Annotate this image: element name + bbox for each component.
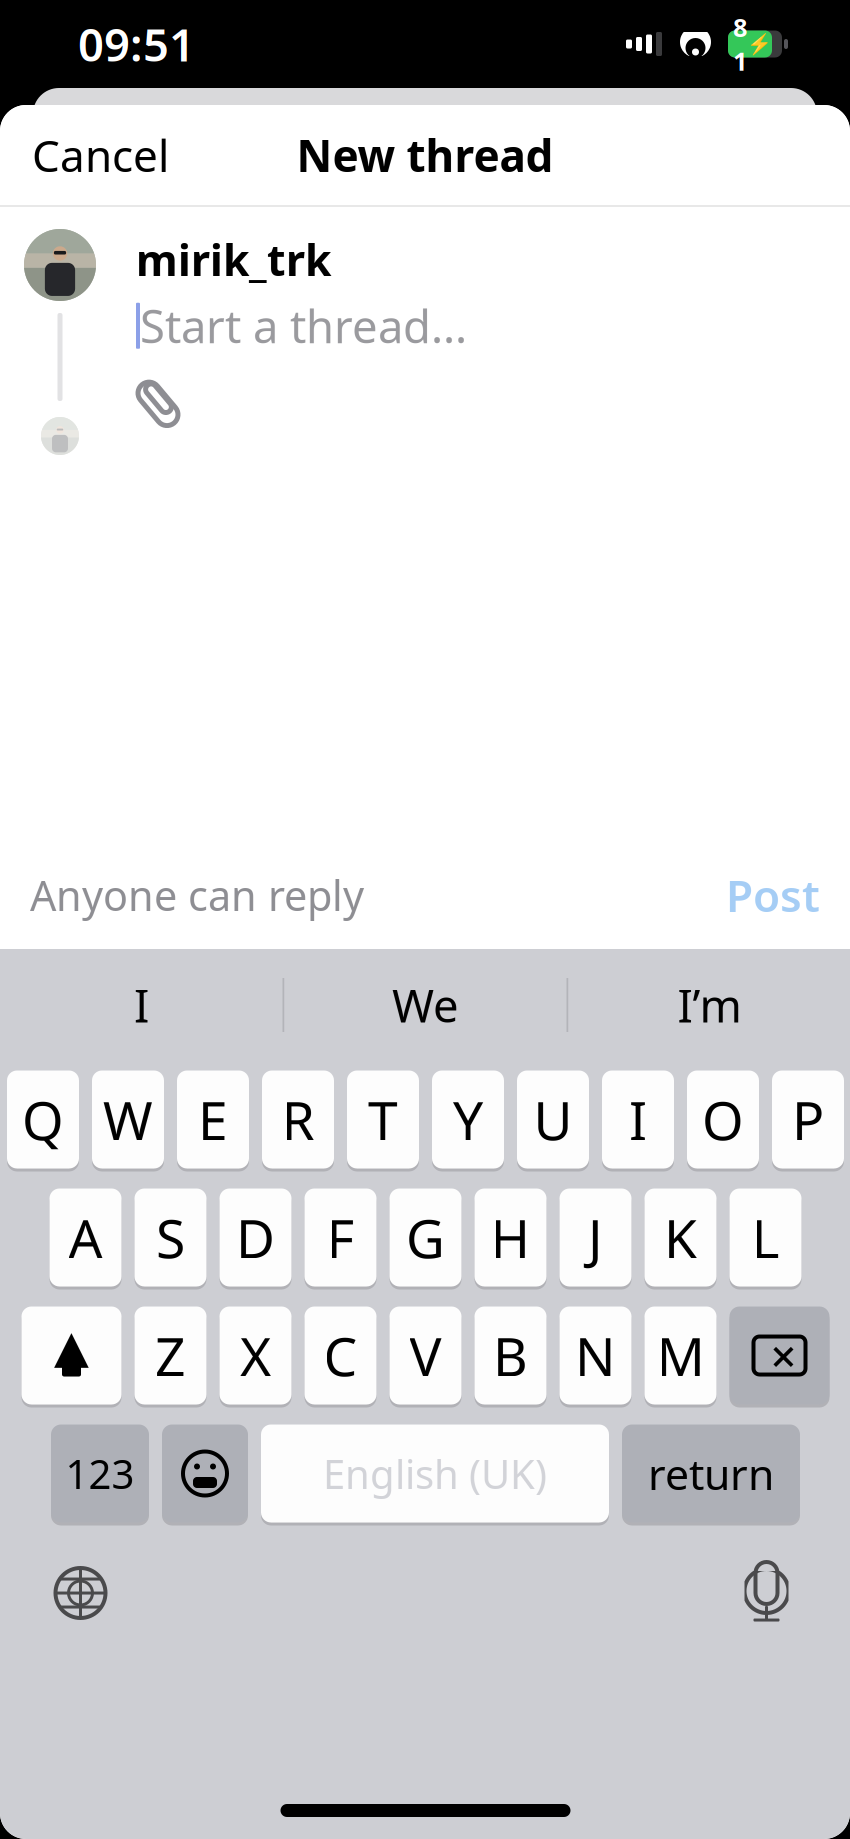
button[interactable]: English (UK) <box>261 1423 609 1524</box>
staticText: U <box>533 1084 572 1155</box>
button[interactable]: V <box>389 1305 461 1406</box>
staticText: We <box>392 975 459 1035</box>
button[interactable]: 123 <box>51 1423 149 1524</box>
staticText: D <box>236 1202 275 1273</box>
staticText: O <box>702 1084 744 1155</box>
staticText: I <box>134 975 149 1035</box>
staticText: B <box>493 1320 528 1391</box>
staticText: C <box>323 1320 357 1391</box>
staticText: ▲ <box>54 1321 89 1372</box>
staticText: N <box>575 1320 616 1391</box>
button[interactable]: D <box>219 1187 291 1288</box>
staticText: 09:51 <box>78 14 195 74</box>
staticText: 123 <box>65 1447 134 1500</box>
staticText: × <box>770 1325 796 1386</box>
button[interactable]: R <box>262 1069 334 1170</box>
staticText: Post <box>726 866 820 924</box>
button[interactable]: Q <box>7 1069 79 1170</box>
staticText: P <box>792 1084 824 1155</box>
button[interactable]: C <box>304 1305 376 1406</box>
button[interactable]: Emoji <box>162 1423 248 1524</box>
button[interactable]: Shift <box>21 1305 121 1406</box>
button[interactable]: A <box>49 1187 121 1288</box>
button[interactable]: O <box>687 1069 759 1170</box>
button[interactable]: X <box>219 1305 291 1406</box>
staticText: V <box>409 1320 441 1391</box>
staticText: ⚡ <box>747 33 772 55</box>
button[interactable]: T <box>347 1069 419 1170</box>
button[interactable]: M <box>644 1305 716 1406</box>
button[interactable]: Post <box>696 848 850 942</box>
staticText: F <box>326 1202 354 1273</box>
button[interactable]: I <box>0 949 282 1061</box>
button[interactable]: J <box>559 1187 631 1288</box>
button[interactable]: P <box>772 1069 844 1170</box>
staticText: Start a thread... <box>140 296 467 356</box>
staticText: S <box>156 1202 185 1273</box>
button[interactable]: S <box>134 1187 206 1288</box>
button[interactable]: We <box>284 949 566 1061</box>
button[interactable]: L <box>729 1187 801 1288</box>
button[interactable]: return <box>622 1423 800 1524</box>
button[interactable]: E <box>177 1069 249 1170</box>
staticText: E <box>198 1084 228 1155</box>
button[interactable]: Attach media <box>136 374 192 434</box>
button[interactable]: I <box>602 1069 674 1170</box>
staticText: Anyone can reply <box>30 868 364 922</box>
button[interactable]: Z <box>134 1305 206 1406</box>
button[interactable]: B <box>474 1305 546 1406</box>
staticText: K <box>664 1202 697 1273</box>
button[interactable]: Change keyboard <box>38 1551 122 1635</box>
staticText: L <box>751 1202 779 1273</box>
button[interactable]: Dictate <box>724 1548 808 1638</box>
button[interactable]: N <box>559 1305 631 1406</box>
button[interactable]: Delete <box>729 1305 829 1406</box>
staticText: Y <box>453 1084 483 1155</box>
button[interactable]: G <box>389 1187 461 1288</box>
staticText: New thread <box>296 126 553 184</box>
staticText: J <box>588 1202 603 1273</box>
staticText: R <box>281 1084 314 1155</box>
staticText: T <box>368 1084 398 1155</box>
staticText: I’m <box>677 975 741 1035</box>
button[interactable]: I’m <box>568 949 850 1061</box>
staticText: W <box>103 1084 153 1155</box>
button[interactable]: W <box>92 1069 164 1170</box>
staticText: Z <box>155 1320 186 1391</box>
button[interactable]: U <box>517 1069 589 1170</box>
staticText: M <box>656 1320 704 1391</box>
button[interactable]: H <box>474 1187 546 1288</box>
staticText: 81 <box>733 10 747 78</box>
button[interactable]: K <box>644 1187 716 1288</box>
staticText: A <box>68 1202 102 1273</box>
staticText: G <box>406 1202 445 1273</box>
staticText: Cancel <box>32 126 169 184</box>
button[interactable]: Cancel <box>0 110 201 200</box>
staticText: X <box>240 1320 271 1391</box>
staticText: mirik_trk <box>136 231 331 288</box>
staticText: Q <box>22 1084 64 1155</box>
staticText: return <box>648 1445 774 1502</box>
button[interactable]: F <box>304 1187 376 1288</box>
button[interactable]: Anyone can reply <box>0 850 394 940</box>
staticText: I <box>629 1084 647 1155</box>
button[interactable]: Y <box>432 1069 504 1170</box>
staticText: English (UK) <box>323 1447 547 1500</box>
staticText: H <box>490 1202 530 1273</box>
